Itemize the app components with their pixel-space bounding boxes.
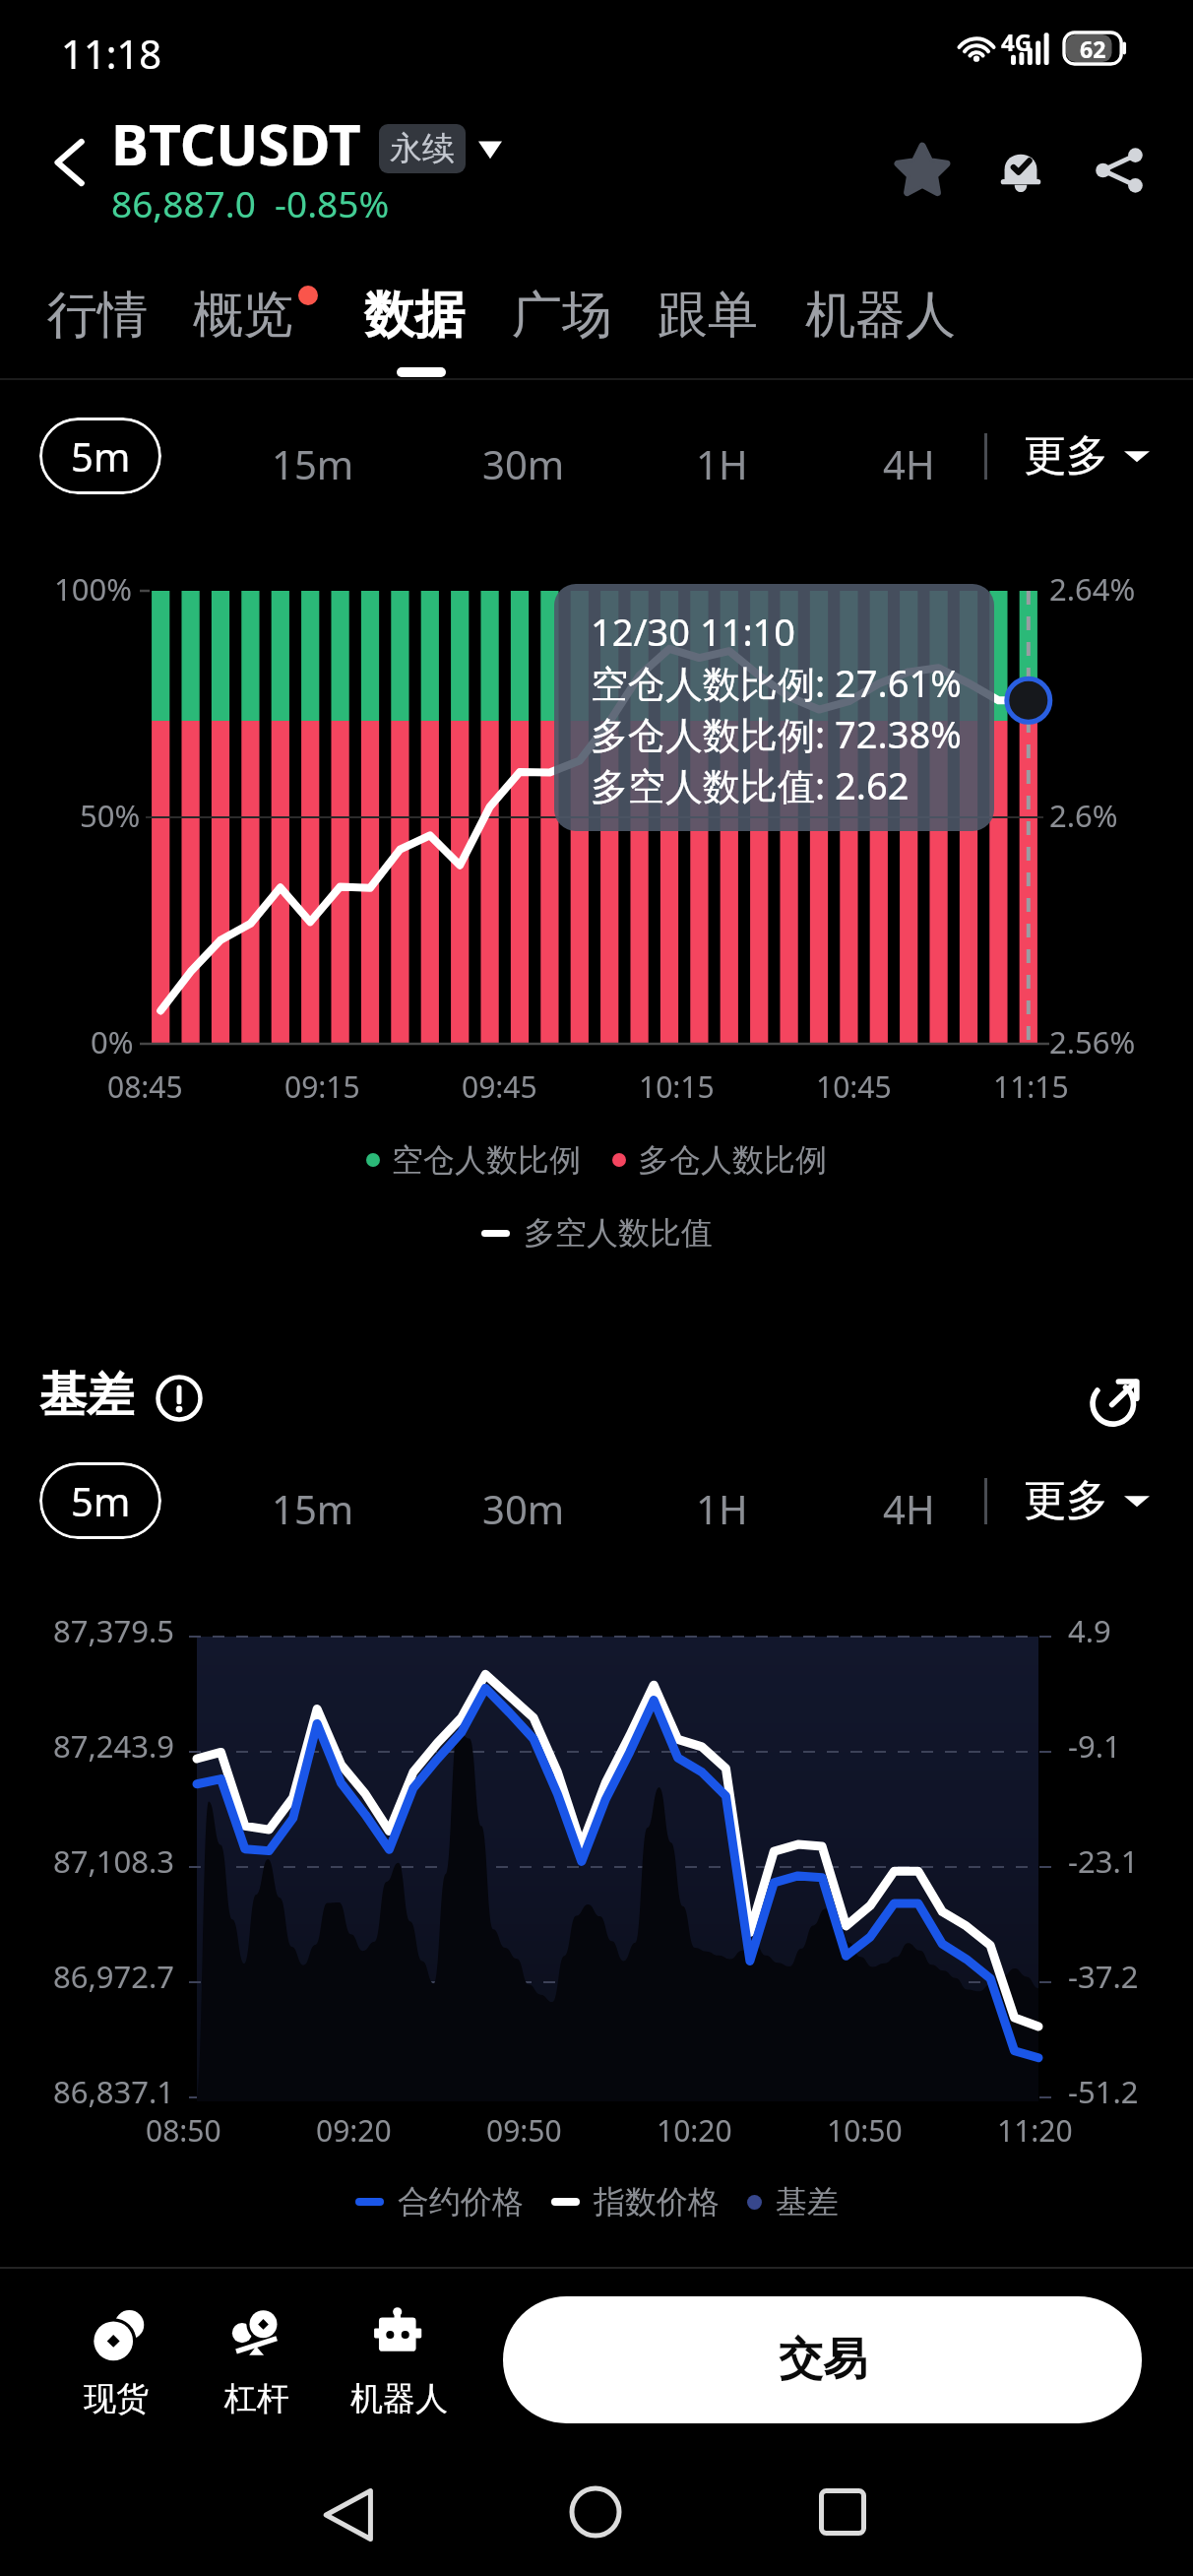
staticText: 62 bbox=[1080, 33, 1106, 64]
staticText: 机器人 bbox=[350, 2378, 448, 2419]
staticText: 1H bbox=[696, 1482, 748, 1535]
staticText: 50% bbox=[80, 795, 141, 836]
button[interactable]: 5m bbox=[39, 1462, 161, 1539]
button[interactable]: Info bbox=[156, 1375, 203, 1422]
button[interactable]: Open full screen bbox=[1088, 1373, 1143, 1428]
button[interactable]: 机器人 bbox=[793, 274, 968, 356]
staticText: 广场 bbox=[512, 284, 612, 347]
staticText: 09:20 bbox=[316, 2110, 392, 2151]
staticText: 1H bbox=[696, 437, 748, 490]
button[interactable]: Back bbox=[311, 2478, 386, 2552]
staticText: 合约价格 bbox=[398, 2182, 524, 2222]
staticText: 100% bbox=[54, 568, 132, 610]
staticText: -37.2 bbox=[1068, 1956, 1139, 1997]
staticText: 交易 bbox=[779, 2332, 867, 2388]
staticText: 10:15 bbox=[639, 1066, 715, 1107]
staticText: 多空人数比值: 2.62 bbox=[591, 759, 910, 810]
staticText: -9.1 bbox=[1068, 1725, 1121, 1767]
staticText: 08:45 bbox=[107, 1066, 183, 1107]
staticText: 杠杆 bbox=[224, 2378, 289, 2419]
staticText: 86,887.0 -0.85% bbox=[111, 178, 390, 227]
staticText: -51.2 bbox=[1068, 2071, 1139, 2112]
button[interactable]: 杠杆 bbox=[194, 2305, 320, 2419]
staticText: 87,379.5 bbox=[53, 1610, 175, 1651]
button[interactable]: 30m bbox=[476, 431, 571, 496]
button[interactable]: 4H bbox=[877, 431, 941, 496]
staticText: 08:50 bbox=[146, 2110, 221, 2151]
staticText: 多仓人数比例: 72.38% bbox=[591, 708, 962, 759]
staticText: 87,243.9 bbox=[53, 1725, 175, 1767]
button[interactable]: 4H bbox=[877, 1476, 941, 1541]
staticText: -23.1 bbox=[1068, 1840, 1139, 1882]
staticText: 4H bbox=[883, 1482, 935, 1535]
staticText: 空仓人数比例: 27.61% bbox=[591, 657, 962, 708]
staticText: 机器人 bbox=[805, 284, 956, 347]
staticText: 2.64% bbox=[1049, 568, 1136, 610]
staticText: 09:50 bbox=[486, 2110, 562, 2151]
button[interactable]: 跟单 bbox=[646, 274, 770, 356]
button[interactable]: 数据 bbox=[352, 274, 476, 356]
staticText: 永续 bbox=[390, 128, 455, 169]
button[interactable]: Share bbox=[1085, 136, 1154, 205]
staticText: 11:15 bbox=[993, 1066, 1069, 1107]
staticText: 空仓人数比例 bbox=[392, 1140, 581, 1180]
staticText: 基差 bbox=[776, 2182, 839, 2222]
staticText: 10:45 bbox=[816, 1066, 892, 1107]
staticText: 更多 bbox=[1024, 429, 1108, 483]
staticText: 30m bbox=[482, 1482, 565, 1535]
staticText: 15m bbox=[272, 1482, 354, 1535]
staticText: 12/30 11:10 bbox=[591, 606, 796, 657]
staticText: 86,972.7 bbox=[53, 1956, 175, 1997]
staticText: 指数价格 bbox=[594, 2182, 720, 2222]
staticText: 15m bbox=[272, 437, 354, 490]
button[interactable]: Price alert bbox=[986, 136, 1055, 205]
staticText: BTCUSDT bbox=[111, 105, 361, 182]
staticText: 4H bbox=[883, 437, 935, 490]
staticText: 基差 bbox=[39, 1366, 134, 1425]
staticText: 86,837.1 bbox=[53, 2071, 175, 2112]
button[interactable]: Recent apps bbox=[805, 2475, 880, 2549]
staticText: 87,108.3 bbox=[53, 1840, 175, 1882]
staticText: 11:20 bbox=[997, 2110, 1073, 2151]
button[interactable]: 1H bbox=[690, 1476, 754, 1541]
button[interactable]: 行情 bbox=[35, 274, 159, 356]
staticText: 行情 bbox=[47, 284, 148, 347]
button[interactable]: 机器人 bbox=[336, 2305, 462, 2419]
staticText: 0% bbox=[91, 1021, 134, 1063]
staticText: 30m bbox=[482, 437, 565, 490]
button[interactable]: 更多 bbox=[1020, 1470, 1154, 1531]
button[interactable]: Back bbox=[37, 131, 100, 194]
button[interactable]: 广场 bbox=[500, 274, 624, 356]
staticText: 10:50 bbox=[827, 2110, 903, 2151]
staticText: 5m bbox=[71, 429, 131, 483]
staticText: 4.9 bbox=[1068, 1610, 1111, 1651]
button[interactable]: 更多 bbox=[1020, 425, 1154, 486]
button[interactable]: 15m bbox=[266, 1476, 360, 1541]
staticText: 11:18 bbox=[61, 27, 162, 80]
staticText: 跟单 bbox=[658, 284, 758, 347]
button[interactable]: Home bbox=[558, 2475, 633, 2549]
staticText: 更多 bbox=[1024, 1474, 1108, 1527]
staticText: 2.6% bbox=[1049, 795, 1118, 836]
button[interactable]: 现货 bbox=[53, 2305, 179, 2419]
staticText: 2.56% bbox=[1049, 1021, 1136, 1063]
button[interactable]: 概览 bbox=[181, 274, 305, 356]
staticText: 数据 bbox=[364, 284, 465, 347]
staticText: 09:15 bbox=[284, 1066, 360, 1107]
button[interactable]: 5m bbox=[39, 418, 161, 494]
staticText: 09:45 bbox=[462, 1066, 537, 1107]
staticText: 现货 bbox=[84, 2378, 149, 2419]
button[interactable]: 30m bbox=[476, 1476, 571, 1541]
button[interactable]: 1H bbox=[690, 431, 754, 496]
button[interactable]: 交易 bbox=[503, 2296, 1142, 2423]
button[interactable]: 15m bbox=[266, 431, 360, 496]
staticText: 5m bbox=[71, 1474, 131, 1527]
staticText: 多空人数比值 bbox=[524, 1213, 713, 1253]
staticText: 概览 bbox=[193, 284, 293, 347]
staticText: 多仓人数比例 bbox=[638, 1140, 827, 1180]
staticText: 4G bbox=[1001, 26, 1033, 58]
staticText: 10:20 bbox=[657, 2110, 732, 2151]
button[interactable]: Favorite bbox=[888, 136, 957, 205]
